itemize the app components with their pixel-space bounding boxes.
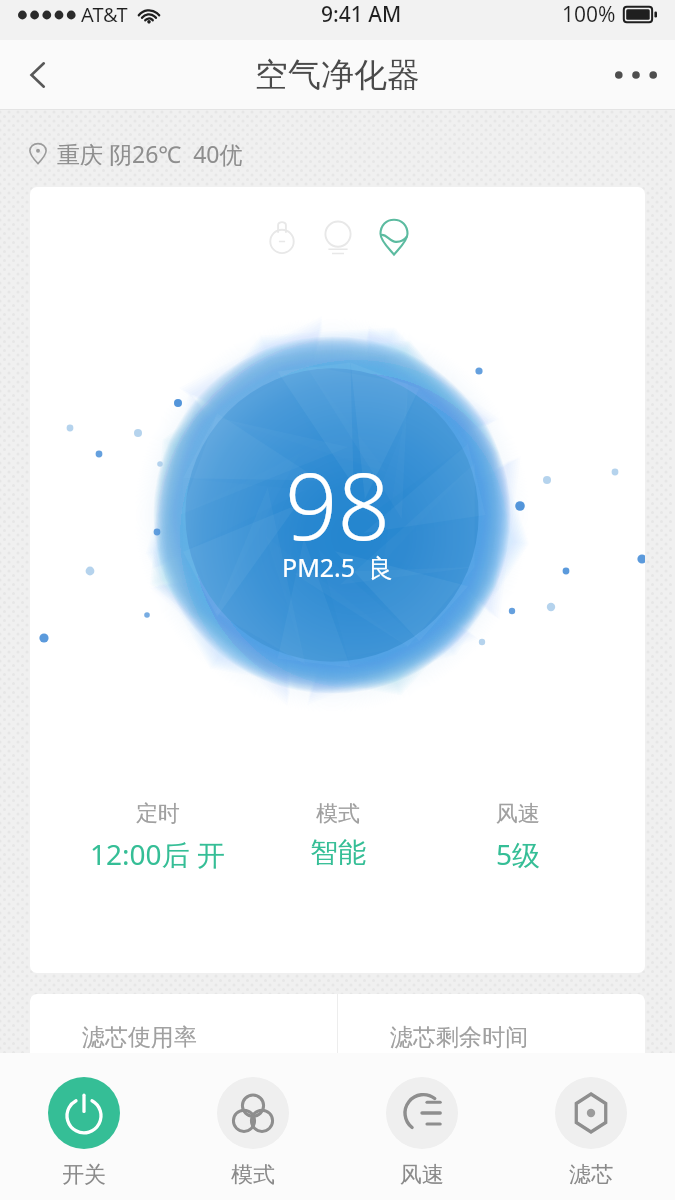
button[interactable]: 模式	[168, 1053, 337, 1189]
staticText: 模式	[316, 800, 360, 828]
staticText: 开关	[62, 1161, 106, 1189]
staticText: 5级	[496, 835, 541, 873]
staticText: 滤芯剩余时间	[390, 1023, 528, 1052]
staticText: 空气净化器	[255, 54, 420, 96]
staticText: 智能	[310, 835, 366, 870]
button[interactable]: Back	[6, 44, 68, 106]
button[interactable]: 滤芯剩余时间	[338, 994, 645, 1124]
button[interactable]: Humidity	[310, 215, 366, 259]
staticText: 100%	[562, 0, 616, 29]
staticText: PM2.5 良	[282, 550, 394, 584]
button[interactable]: 风速	[337, 1053, 506, 1189]
button[interactable]: 风速	[428, 800, 608, 873]
staticText: 风速	[400, 1161, 444, 1189]
staticText: 98	[285, 442, 391, 567]
staticText: 重庆 阴26℃ 40优	[57, 138, 243, 169]
button[interactable]: 定时	[67, 800, 248, 873]
button[interactable]: 滤芯使用率	[30, 994, 337, 1124]
staticText: 12:00后 开	[90, 835, 225, 873]
staticText: 模式	[231, 1161, 275, 1189]
button[interactable]: 模式	[248, 800, 428, 870]
staticText: 9:41 AM	[321, 0, 402, 29]
button[interactable]: 开关	[0, 1053, 168, 1189]
button[interactable]: Temperature	[254, 215, 310, 259]
staticText: 滤芯	[569, 1161, 613, 1189]
button[interactable]: 滤芯	[506, 1053, 675, 1189]
staticText: AT&T	[81, 1, 128, 28]
staticText: 风速	[496, 800, 540, 828]
button[interactable]: Air quality	[366, 215, 422, 259]
button[interactable]: More options	[605, 44, 667, 106]
staticText: 滤芯使用率	[82, 1023, 197, 1052]
staticText: 定时	[136, 800, 180, 828]
